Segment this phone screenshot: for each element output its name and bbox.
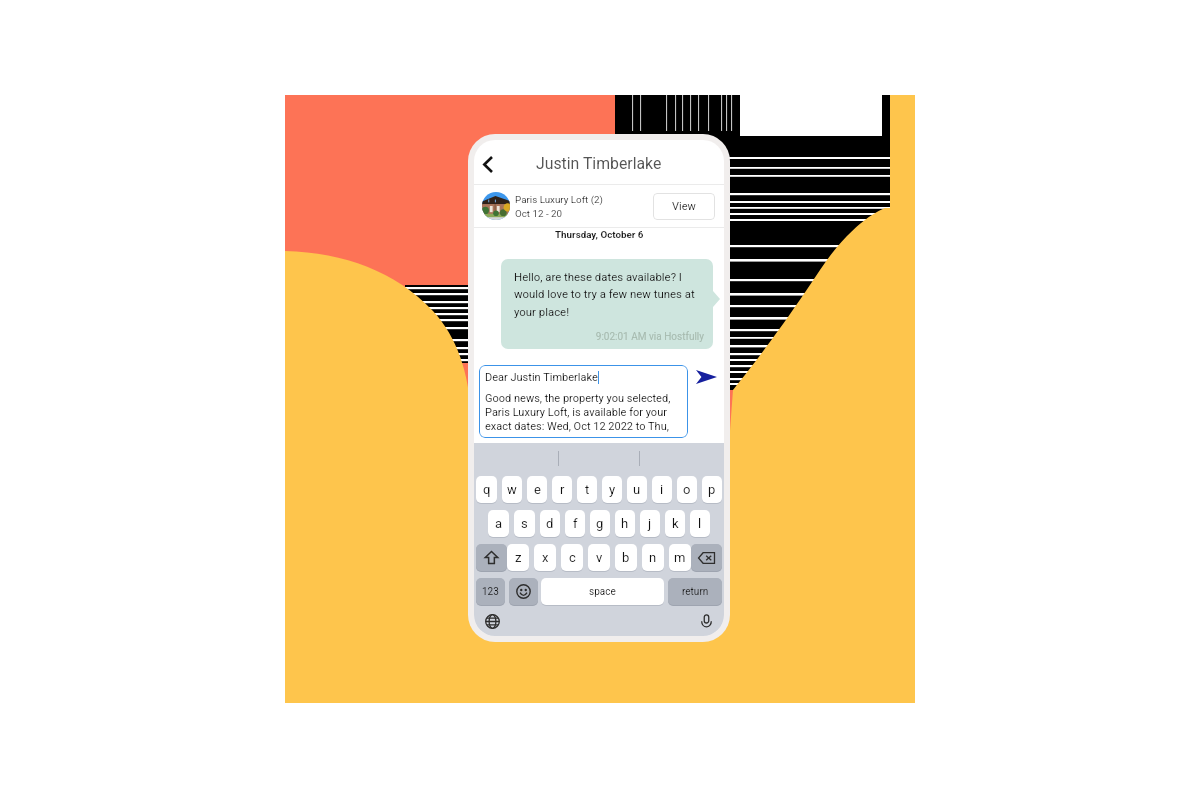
staticText: Paris Luxury Loft (2): [515, 194, 604, 205]
button[interactable]: m: [669, 544, 691, 571]
button[interactable]: t: [577, 476, 597, 503]
button[interactable]: Backspace: [691, 544, 722, 571]
staticText: n: [649, 550, 657, 565]
button[interactable]: Numbers: [476, 578, 505, 605]
staticText: x: [542, 550, 549, 565]
staticText: s: [521, 516, 528, 531]
button[interactable]: x: [534, 544, 556, 571]
staticText: Hello, are these dates available? I woul…: [514, 270, 704, 319]
button[interactable]: Return: [668, 578, 722, 605]
staticText: t: [585, 482, 590, 497]
staticText: y: [609, 482, 616, 497]
button[interactable]: v: [588, 544, 610, 571]
staticText: a: [495, 516, 503, 531]
staticText: return: [682, 586, 709, 598]
staticText: d: [546, 516, 554, 531]
staticText: m: [674, 550, 686, 565]
button[interactable]: s: [514, 510, 535, 537]
staticText: b: [622, 550, 630, 565]
staticText: Good news, the property you selected, Pa…: [485, 392, 677, 433]
staticText: u: [633, 482, 641, 497]
staticText: h: [621, 516, 629, 531]
staticText: r: [560, 482, 565, 497]
button[interactable]: Dear Justin Timberlake: [479, 365, 688, 438]
staticText: space: [589, 586, 616, 598]
staticText: 9:02:01 AM via Hostfully: [514, 331, 704, 343]
button[interactable]: y: [602, 476, 622, 503]
button[interactable]: e: [527, 476, 547, 503]
button[interactable]: p: [702, 476, 722, 503]
button[interactable]: Emoji: [509, 578, 538, 605]
staticText: k: [672, 516, 679, 531]
button[interactable]: l: [690, 510, 710, 537]
staticText: w: [507, 482, 517, 497]
staticText: g: [596, 516, 604, 531]
button[interactable]: a: [488, 510, 509, 537]
staticText: e: [534, 482, 541, 497]
button[interactable]: q: [476, 476, 497, 503]
staticText: 123: [482, 586, 499, 598]
button[interactable]: h: [615, 510, 635, 537]
staticText: View: [672, 200, 696, 213]
button[interactable]: o: [677, 476, 697, 503]
button[interactable]: j: [640, 510, 660, 537]
button[interactable]: Change keyboard: [481, 610, 503, 632]
button[interactable]: space: [541, 578, 664, 605]
staticText: p: [708, 482, 716, 497]
button[interactable]: d: [540, 510, 560, 537]
button[interactable]: Back: [474, 151, 500, 177]
button[interactable]: i: [652, 476, 672, 503]
staticText: z: [515, 550, 522, 565]
staticText: i: [660, 482, 664, 497]
button[interactable]: c: [561, 544, 583, 571]
button[interactable]: n: [642, 544, 664, 571]
button[interactable]: f: [565, 510, 585, 537]
button[interactable]: g: [590, 510, 610, 537]
button[interactable]: u: [627, 476, 647, 503]
button[interactable]: r: [552, 476, 572, 503]
button[interactable]: z: [507, 544, 529, 571]
staticText: f: [573, 516, 578, 531]
button[interactable]: b: [615, 544, 637, 571]
button[interactable]: k: [665, 510, 685, 537]
staticText: o: [683, 482, 691, 497]
button[interactable]: w: [502, 476, 522, 503]
staticText: j: [648, 516, 652, 531]
staticText: Dear Justin Timberlake: [485, 371, 598, 384]
staticText: Thursday, October 6: [555, 229, 644, 240]
staticText: v: [596, 550, 603, 565]
button[interactable]: Shift: [476, 544, 507, 571]
staticText: Justin Timberlake: [536, 154, 662, 173]
staticText: l: [698, 516, 702, 531]
button[interactable]: Send: [689, 363, 723, 391]
button[interactable]: Dictate: [695, 610, 717, 632]
button[interactable]: View: [653, 193, 715, 220]
staticText: c: [569, 550, 576, 565]
staticText: Oct 12 - 20: [515, 208, 563, 219]
staticText: q: [483, 482, 491, 497]
